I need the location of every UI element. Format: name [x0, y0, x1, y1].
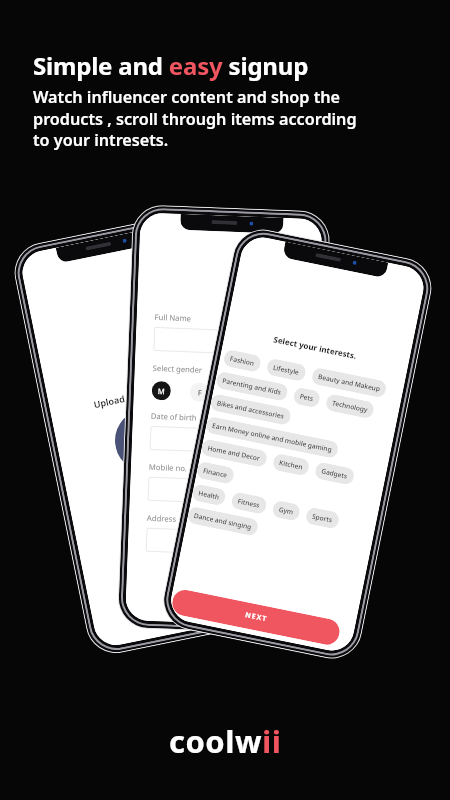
- button[interactable]: Technology: [325, 393, 375, 419]
- button[interactable]: Parenting and Kids: [215, 371, 289, 402]
- button[interactable]: Bikes and accessories: [209, 393, 292, 426]
- staticText: Fashion: [229, 354, 255, 368]
- staticText: Parenting and Kids: [222, 376, 282, 397]
- button[interactable]: Gadgets: [314, 461, 355, 486]
- staticText: M: [158, 386, 165, 396]
- staticText: NEXT: [244, 610, 269, 625]
- button[interactable]: Health: [191, 483, 227, 506]
- button[interactable]: Beauty and Makeup: [311, 367, 387, 398]
- staticText: Simple and easy signup: [33, 49, 309, 82]
- staticText: Gadgets: [320, 466, 349, 481]
- staticText: Select gender: [152, 363, 203, 375]
- staticText: Kitchen: [278, 458, 304, 471]
- staticText: Address: [147, 513, 177, 524]
- staticText: Fitness: [237, 496, 261, 510]
- staticText: Full Name: [154, 312, 192, 323]
- button[interactable]: Gym: [271, 500, 301, 522]
- staticText: Home and Decor: [207, 443, 262, 463]
- staticText: Watch influencer content and shop the pr…: [33, 86, 371, 150]
- staticText: Health: [198, 488, 220, 501]
- staticText: Beauty and Makeup: [317, 372, 381, 393]
- staticText: Upload your picture: [92, 381, 181, 410]
- staticText: Dance and singing: [193, 511, 253, 532]
- staticText: Date of birth: [151, 411, 197, 423]
- button[interactable]: Kitchen: [272, 453, 310, 477]
- button[interactable]: NEXT: [170, 588, 342, 647]
- staticText: Sports: [311, 512, 334, 525]
- button[interactable]: Home and Decor: [200, 438, 268, 468]
- staticText: Gym: [278, 505, 294, 517]
- staticText: Earn Money online and mobile gaming: [211, 421, 333, 454]
- staticText: Pets: [299, 392, 314, 403]
- button[interactable]: Fashion: [222, 349, 262, 373]
- button[interactable]: coolwii: [169, 720, 282, 762]
- staticText: Mobile no.: [149, 462, 188, 473]
- staticText: Select your interests.: [273, 333, 358, 361]
- staticText: F: [198, 388, 202, 398]
- button[interactable]: Lifestyle: [266, 358, 307, 382]
- button[interactable]: Sports: [305, 506, 340, 530]
- staticText: coolwii: [169, 720, 282, 762]
- staticText: Lifestyle: [272, 363, 300, 377]
- button[interactable]: Pets: [292, 387, 321, 408]
- staticText: Bikes and accessories: [216, 398, 285, 421]
- button[interactable]: Earn Money online and mobile gaming: [205, 416, 339, 459]
- staticText: Finance: [202, 466, 229, 480]
- button[interactable]: Dance and singing: [186, 506, 259, 537]
- button[interactable]: Finance: [196, 461, 235, 485]
- button[interactable]: Fitness: [230, 491, 268, 515]
- staticText: Technology: [331, 398, 368, 414]
